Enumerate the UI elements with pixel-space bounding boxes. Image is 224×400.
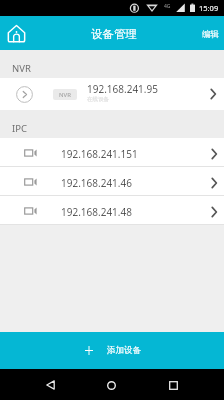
button[interactable]: 192.168.241.46 — [0, 167, 224, 195]
button[interactable]: Home — [96, 370, 126, 400]
staticText: 192.168.241.48 — [61, 205, 132, 219]
staticText: NVR — [12, 62, 31, 75]
staticText: 192.168.241.151 — [61, 147, 138, 161]
staticText: NVR — [59, 91, 71, 99]
staticText: 4G — [164, 3, 171, 10]
button[interactable]: 编辑 — [202, 29, 219, 40]
staticText: 15:09 — [199, 3, 219, 13]
staticText: 192.168.241.46 — [61, 176, 132, 190]
button[interactable]: Recents — [158, 370, 188, 400]
staticText: 192.168.241.95 — [87, 82, 158, 96]
staticText: 添加设备 — [107, 345, 141, 356]
button[interactable]: NVR — [0, 78, 224, 110]
button[interactable]: 192.168.241.151 — [0, 138, 224, 166]
other: Open — [210, 177, 218, 189]
staticText: 编辑 — [202, 29, 219, 40]
staticText: 在线设备 — [87, 96, 109, 103]
button[interactable]: 192.168.241.48 — [0, 196, 224, 224]
other: Open — [210, 148, 218, 160]
button[interactable]: Home — [3, 20, 29, 46]
staticText: 设备管理 — [91, 27, 137, 41]
other: Open — [209, 88, 217, 100]
staticText: IPC — [12, 122, 27, 135]
button[interactable]: Back — [35, 370, 65, 400]
button[interactable]: 添加设备 — [0, 332, 224, 369]
other: Open — [210, 206, 218, 218]
